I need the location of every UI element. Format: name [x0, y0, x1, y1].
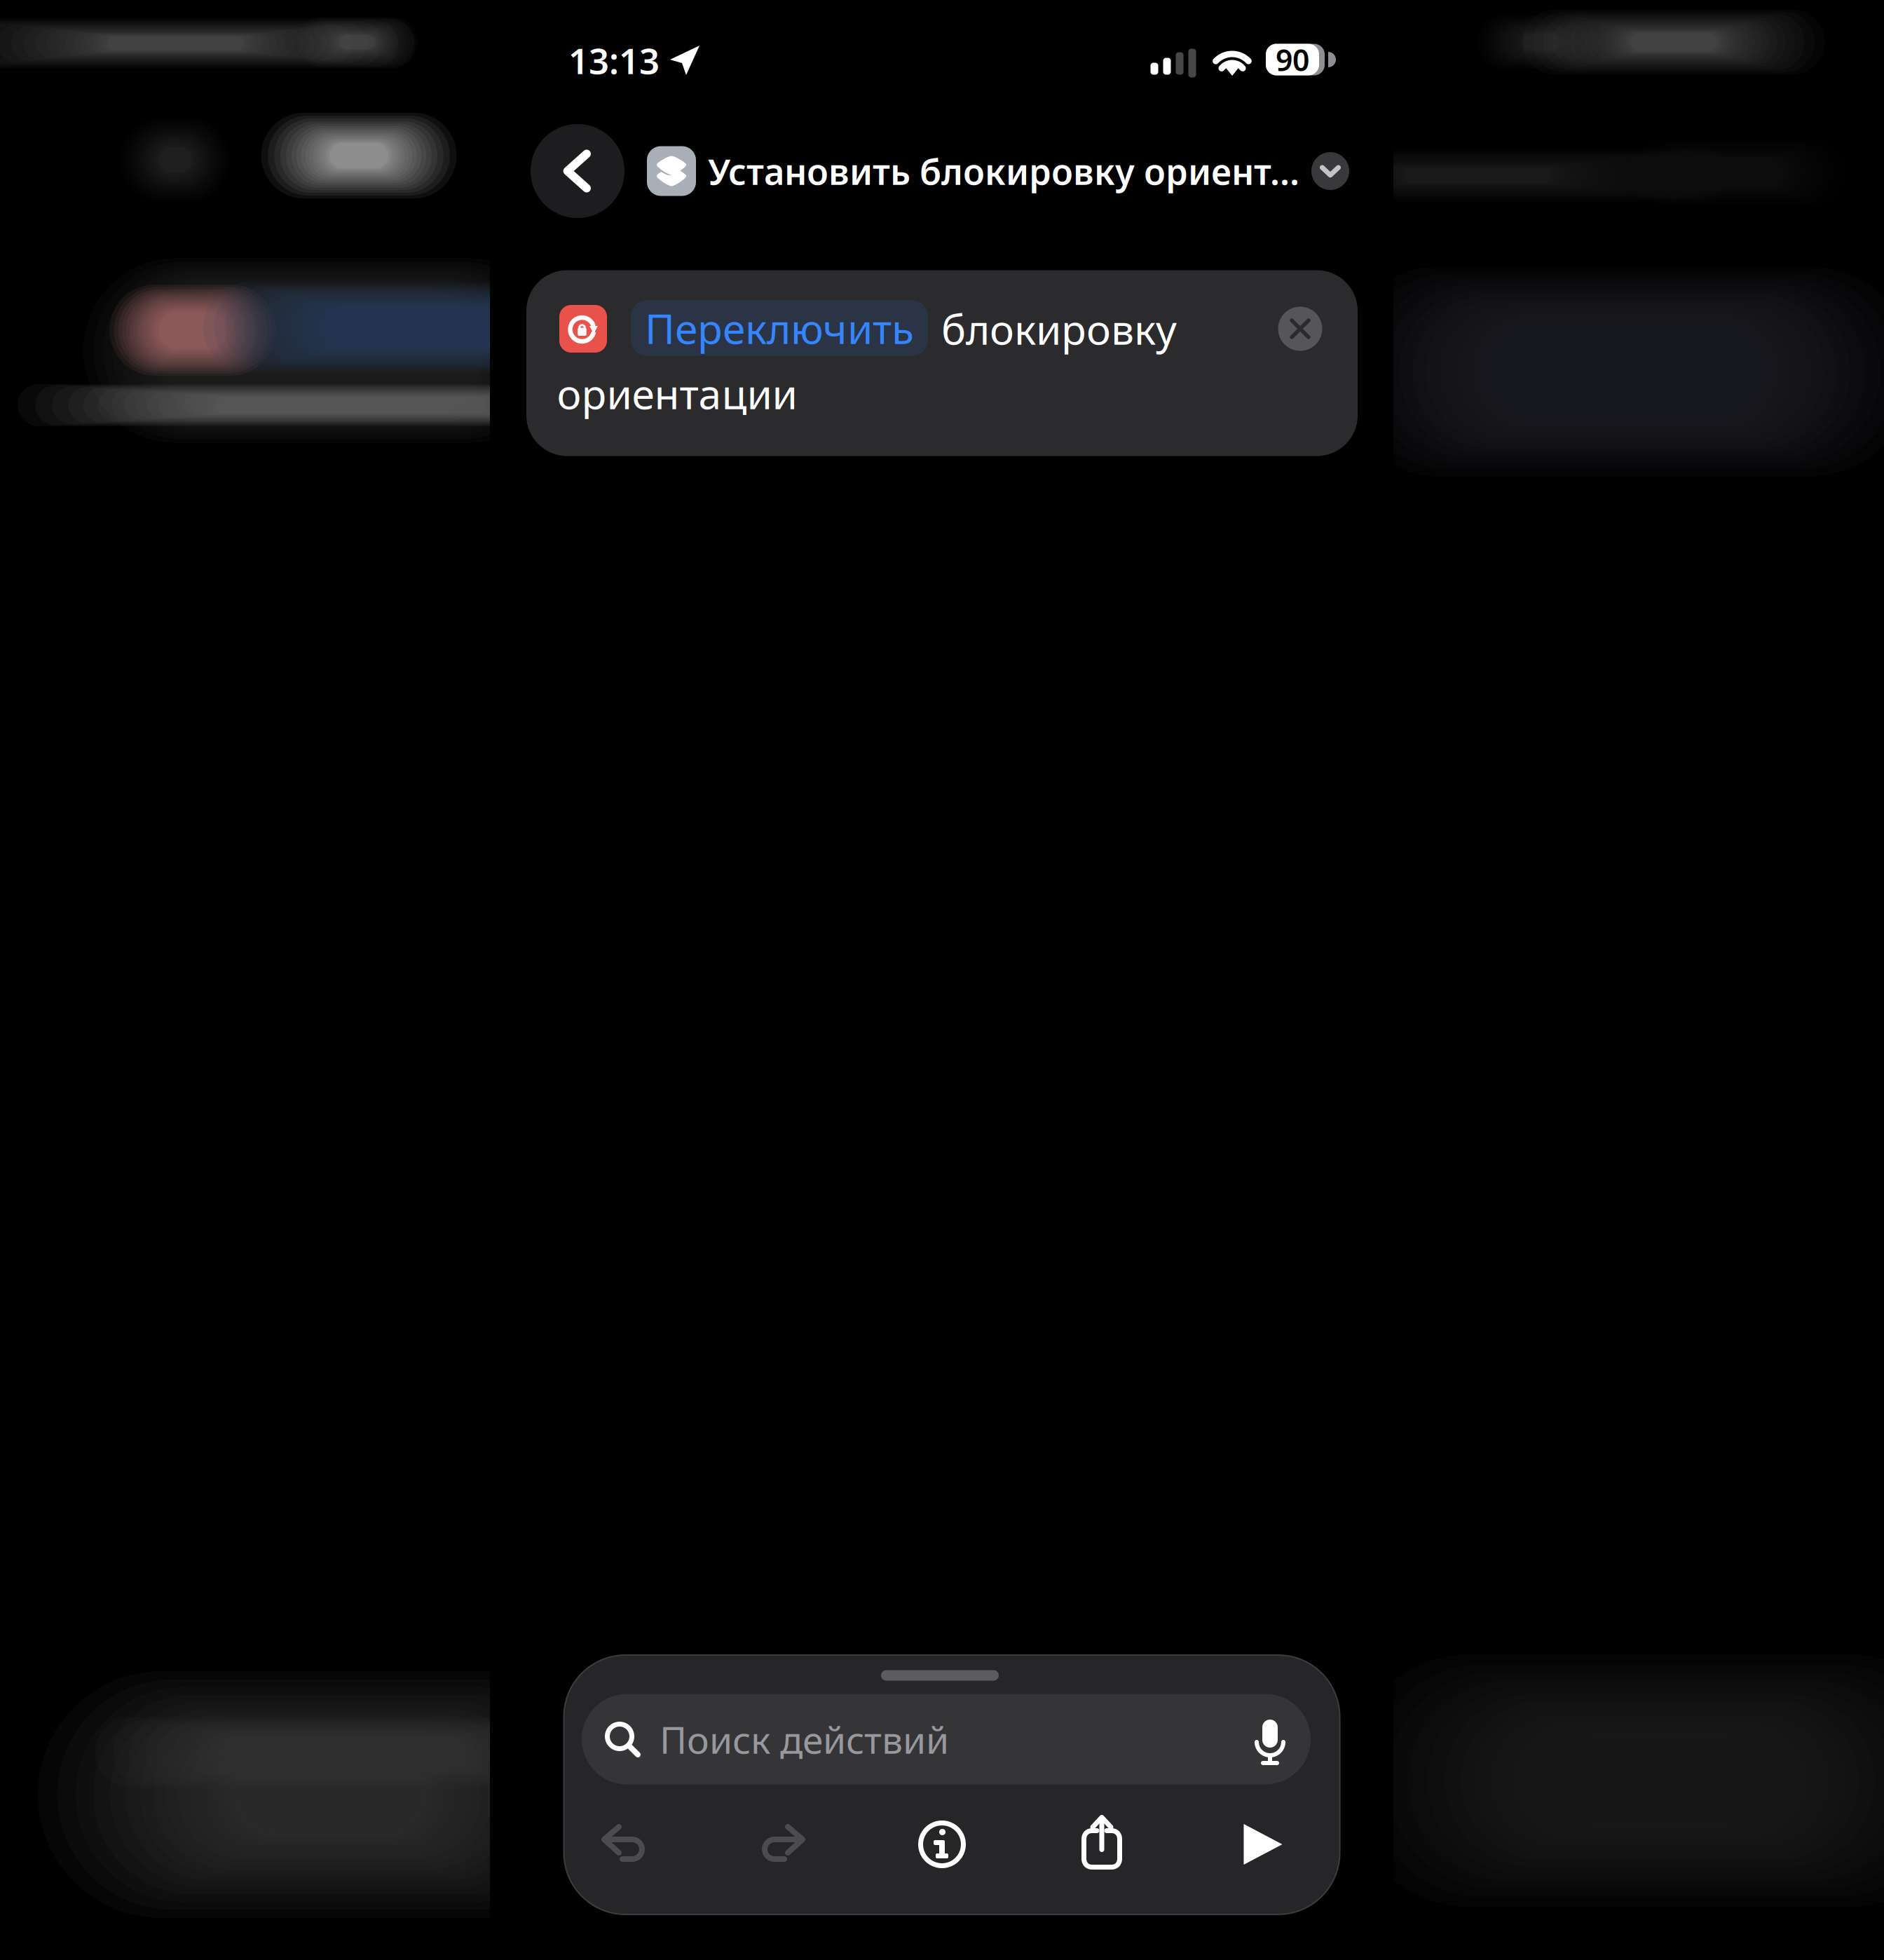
button[interactable]: Run	[1242, 1823, 1284, 1866]
staticText: Переключить	[645, 301, 914, 355]
staticText: Установить блокировку ориент...	[708, 147, 1299, 195]
button[interactable]: Show action details	[1311, 152, 1349, 190]
staticText: Поиск действий	[660, 1714, 949, 1764]
staticText: 13:13	[568, 37, 660, 84]
staticText: ориентации	[557, 366, 797, 421]
staticText: 90	[1276, 40, 1309, 79]
button[interactable]: Info	[917, 1819, 967, 1870]
button[interactable]: Back	[531, 124, 624, 218]
button[interactable]: Undo	[601, 1823, 646, 1865]
staticText: блокировку	[941, 301, 1177, 356]
button[interactable]: Remove action	[1278, 307, 1322, 351]
button[interactable]: Redo	[761, 1823, 806, 1865]
button[interactable]: Share	[1081, 1813, 1122, 1870]
